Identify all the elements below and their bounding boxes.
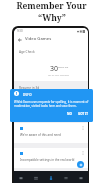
staticText: 9:30 bbox=[17, 29, 23, 33]
staticText: Age Check bbox=[19, 50, 35, 54]
staticText: Resume in 3d bbox=[19, 86, 40, 90]
button[interactable]: More bbox=[73, 171, 88, 183]
button[interactable]: Incompatible settings in the real world bbox=[14, 148, 88, 168]
staticText: Incompatible settings in the real world bbox=[20, 158, 75, 162]
staticText: set by your guardian bbox=[48, 74, 70, 77]
staticText: Video Games bbox=[25, 36, 52, 42]
button[interactable]: Add bbox=[77, 161, 84, 168]
staticText: Remember Your bbox=[16, 0, 87, 12]
staticText: We're aware of this and need bbox=[20, 133, 61, 137]
staticText: Whilst Exam uses requests for spelling, … bbox=[14, 100, 89, 108]
button[interactable]: We're aware of this and need bbox=[14, 123, 88, 143]
button[interactable]: Stats bbox=[43, 171, 58, 183]
button[interactable]: NO bbox=[65, 111, 74, 117]
staticText: years old bbox=[58, 65, 69, 68]
button[interactable]: INFO bbox=[10, 89, 93, 122]
staticText: INFO bbox=[23, 92, 32, 97]
button[interactable]: GOT IT bbox=[76, 111, 90, 117]
button[interactable]: Apps bbox=[28, 171, 43, 183]
staticText: “Why” bbox=[38, 12, 66, 24]
button[interactable]: People bbox=[58, 171, 73, 183]
button[interactable]: Home bbox=[14, 171, 28, 183]
staticText: 30 bbox=[50, 64, 59, 74]
button[interactable]: Back bbox=[16, 36, 23, 43]
